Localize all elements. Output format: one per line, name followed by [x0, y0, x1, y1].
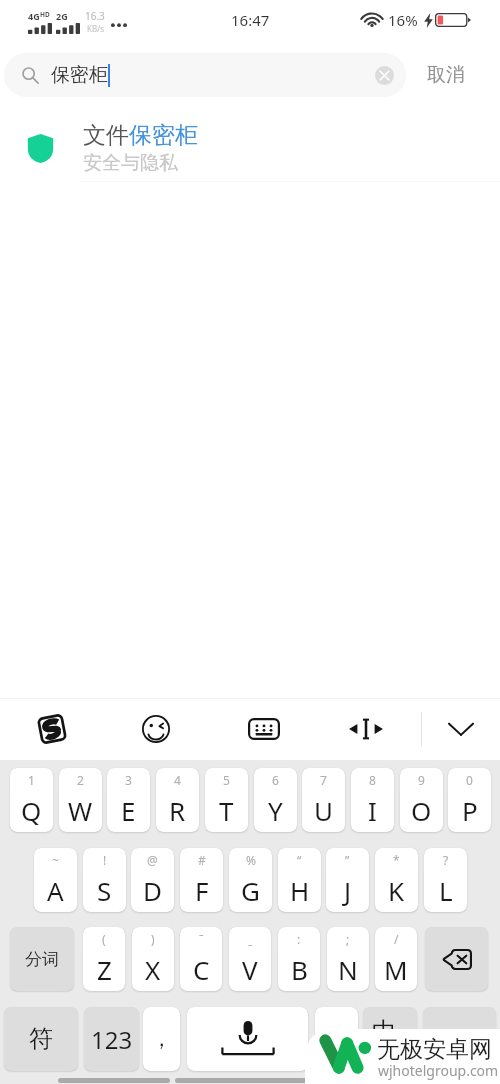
staticText: 无极安卓网 [377, 1035, 492, 1064]
staticText: ? [443, 852, 449, 868]
button[interactable]: 文件 [0, 112, 500, 182]
staticText: Q [21, 793, 42, 828]
staticText: M [384, 952, 408, 987]
staticText: B [291, 952, 308, 987]
button[interactable]: 1 [10, 768, 53, 832]
staticText: 16:47 [231, 10, 270, 30]
button[interactable]: 123 [84, 1007, 139, 1071]
button[interactable]: ” [326, 848, 369, 912]
staticText: 4G [28, 10, 40, 22]
staticText: 9 [418, 772, 425, 788]
staticText: 16.3 [85, 9, 105, 23]
staticText: K [388, 873, 405, 908]
button[interactable]: 保密柜 [4, 53, 406, 97]
button[interactable]: ; [327, 927, 369, 991]
button[interactable]: Keyboard layout [238, 703, 290, 755]
staticText: ; [346, 931, 350, 947]
button[interactable]: 5 [205, 768, 248, 832]
button[interactable]: ? [424, 848, 467, 912]
staticText: 保密柜 [129, 121, 198, 150]
staticText: V [242, 952, 258, 987]
staticText: ˍ [248, 931, 253, 947]
staticText: T [219, 793, 234, 828]
button[interactable]: Backspace [425, 927, 488, 991]
button[interactable]: : [278, 927, 320, 991]
button[interactable]: # [180, 848, 223, 912]
button[interactable]: Enter [423, 1007, 496, 1071]
staticText: P [462, 793, 478, 828]
staticText: ， [151, 1026, 172, 1052]
staticText: / [394, 931, 399, 947]
button[interactable]: Emoji [130, 703, 182, 755]
staticText: D [143, 873, 162, 908]
staticText: 7 [320, 772, 327, 788]
button[interactable]: ! [83, 848, 126, 912]
staticText: 保密柜 [51, 63, 108, 87]
staticText: ) [151, 931, 155, 947]
staticText: ( [102, 931, 106, 947]
button[interactable]: ) [132, 927, 174, 991]
staticText: 符 [29, 1024, 53, 1054]
staticText: 8 [369, 772, 376, 788]
staticText: HD [40, 10, 50, 19]
staticText: 5 [223, 772, 230, 788]
button[interactable]: ( [83, 927, 125, 991]
staticText: ” [345, 852, 350, 868]
button[interactable]: 符 [4, 1007, 78, 1071]
button[interactable]: Move cursor [340, 703, 392, 755]
staticText: J [344, 873, 352, 908]
button[interactable]: 分词 [10, 927, 74, 991]
staticText: 16% [388, 10, 418, 30]
button[interactable]: 。 [315, 1007, 358, 1071]
button[interactable]: @ [131, 848, 174, 912]
button[interactable]: 7 [302, 768, 345, 832]
button[interactable]: 0 [448, 768, 491, 832]
button[interactable]: * [375, 848, 418, 912]
staticText: W [68, 793, 93, 828]
button[interactable]: ~ [34, 848, 77, 912]
button[interactable]: Sogou input method [26, 703, 78, 755]
staticText: 2 [77, 772, 84, 788]
button[interactable]: % [229, 848, 272, 912]
staticText: Z [97, 952, 112, 987]
button[interactable]: Switch language [363, 1007, 417, 1071]
staticText: 4 [174, 772, 181, 788]
button[interactable]: 2 [59, 768, 102, 832]
button[interactable]: “ [278, 848, 321, 912]
staticText: A [47, 873, 64, 908]
staticText: 分词 [25, 949, 59, 970]
staticText: : [297, 931, 301, 947]
staticText: @ [147, 852, 158, 868]
button[interactable]: Clear text [375, 66, 394, 85]
staticText: C [193, 952, 210, 987]
button[interactable]: 9 [400, 768, 443, 832]
button[interactable]: ˉ [180, 927, 222, 991]
button[interactable]: ˍ [229, 927, 271, 991]
staticText: 123 [91, 1023, 133, 1056]
staticText: X [145, 952, 161, 987]
button[interactable]: 3 [107, 768, 150, 832]
button[interactable]: 6 [254, 768, 297, 832]
staticText: G [241, 873, 260, 908]
staticText: E [121, 793, 136, 828]
button[interactable]: Hide keyboard [435, 703, 487, 755]
button[interactable]: 8 [351, 768, 394, 832]
staticText: S [97, 873, 112, 908]
staticText: Y [268, 793, 283, 828]
button[interactable]: ， [143, 1007, 180, 1071]
staticText: N [338, 952, 358, 987]
button[interactable]: 4 [156, 768, 199, 832]
staticText: 3 [125, 772, 132, 788]
staticText: “ [297, 852, 302, 868]
staticText: O [411, 793, 432, 828]
button[interactable]: 取消 [420, 53, 472, 97]
staticText: ! [103, 852, 107, 868]
staticText: I [368, 793, 377, 828]
staticText: 。 [326, 1026, 347, 1052]
staticText: 6 [272, 772, 279, 788]
button[interactable]: Space [187, 1007, 308, 1071]
button[interactable]: / [375, 927, 417, 991]
staticText: 0 [466, 772, 473, 788]
staticText: 安全与隐私 [83, 151, 178, 175]
staticText: 2G [56, 10, 68, 22]
